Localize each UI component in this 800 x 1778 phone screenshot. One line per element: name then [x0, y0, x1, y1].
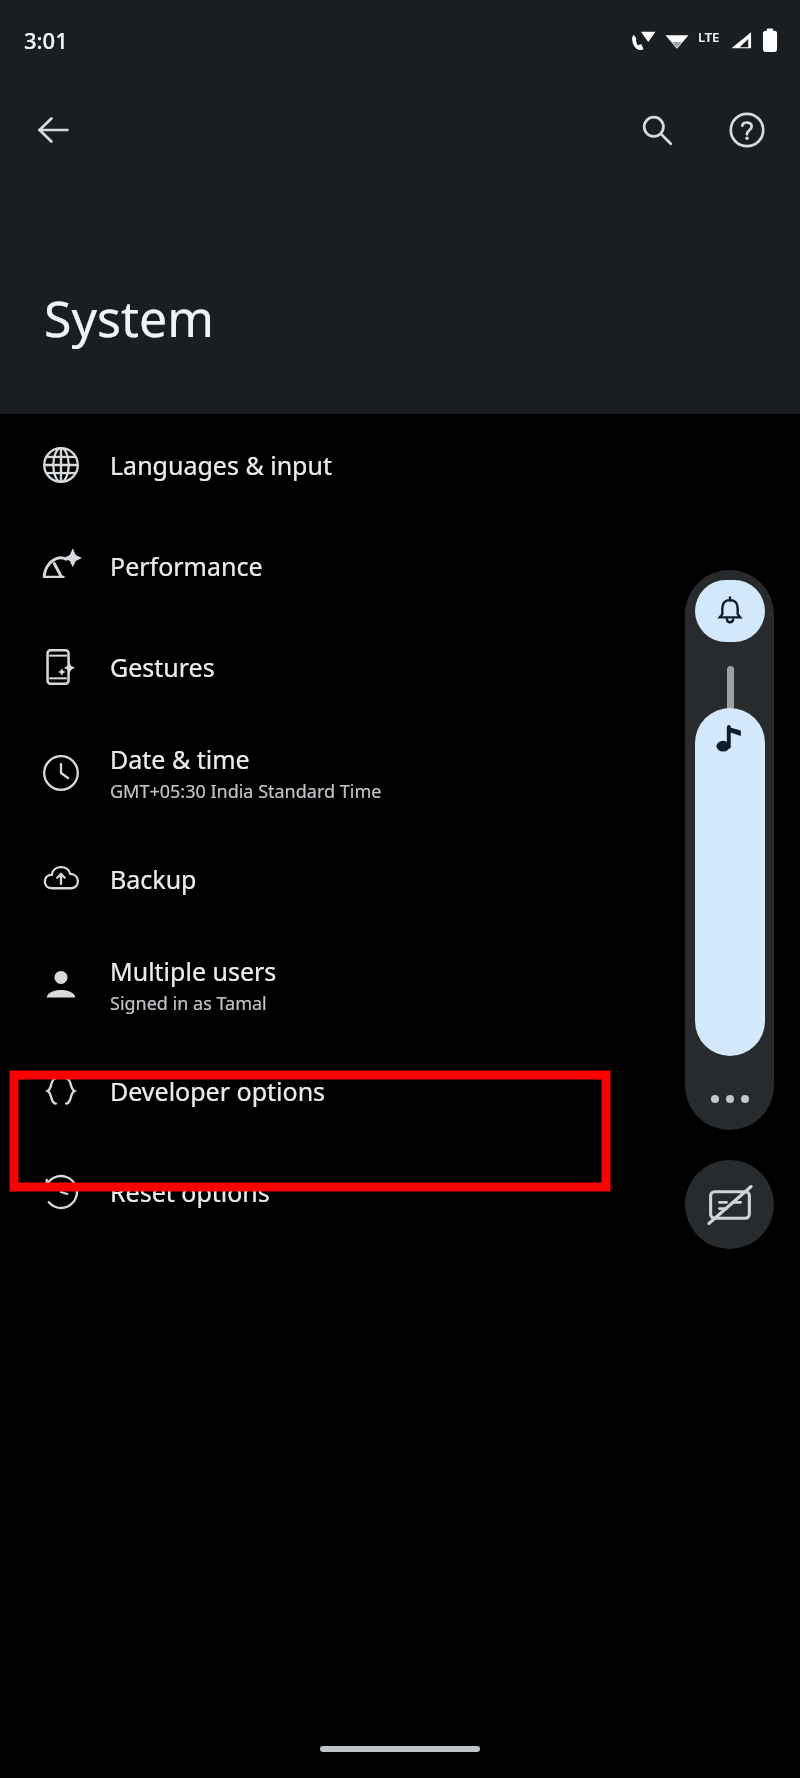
button[interactable] — [695, 666, 765, 1056]
button[interactable]: Help — [716, 99, 778, 161]
button[interactable]: Multiple users — [0, 929, 800, 1040]
staticText: Reset options — [110, 1175, 270, 1209]
staticText: Backup — [110, 862, 197, 896]
button[interactable]: More volume settings — [695, 1074, 765, 1124]
staticText: 3:01 — [24, 25, 68, 55]
staticText: Developer options — [110, 1074, 326, 1108]
button[interactable]: Performance — [0, 515, 800, 616]
button[interactable]: Backup — [0, 828, 800, 929]
staticText: Multiple users — [110, 954, 277, 988]
staticText: System — [44, 284, 214, 352]
staticText: Performance — [110, 549, 263, 583]
button[interactable]: Captions off — [685, 1160, 774, 1249]
staticText: Gestures — [110, 650, 215, 684]
button[interactable]: Back — [22, 99, 84, 161]
staticText: LTE — [698, 28, 720, 46]
button[interactable]: Developer options — [0, 1040, 800, 1141]
button[interactable]: Reset options — [0, 1141, 800, 1242]
staticText: Signed in as Tamal — [110, 991, 267, 1016]
button[interactable]: Languages & input — [0, 414, 800, 515]
button[interactable]: Search — [626, 99, 688, 161]
button[interactable]: Date & time — [0, 717, 800, 828]
button[interactable]: Gestures — [0, 616, 800, 717]
staticText: Date & time — [110, 742, 250, 776]
button[interactable]: Ring — [695, 580, 765, 642]
staticText: Languages & input — [110, 448, 332, 482]
staticText: GMT+05:30 India Standard Time — [110, 779, 382, 804]
